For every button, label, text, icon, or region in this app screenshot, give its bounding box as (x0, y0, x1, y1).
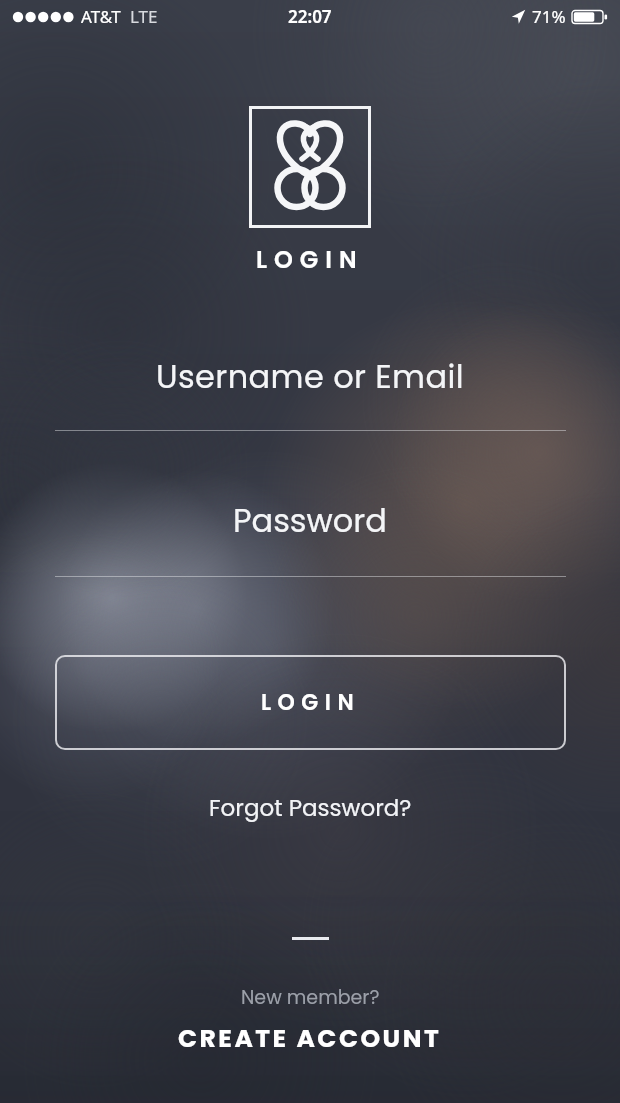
button[interactable]: CREATE ACCOUNT (178, 1021, 442, 1056)
staticText: LTE (130, 5, 158, 28)
staticText: LOGIN (256, 243, 364, 277)
button[interactable]: LOGIN (55, 655, 566, 750)
button[interactable]: Username or Email (156, 354, 465, 399)
staticText: 71% (532, 5, 566, 28)
staticText: AT&T (81, 5, 121, 28)
staticText: New member? (241, 984, 380, 1011)
staticText: LOGIN (261, 687, 361, 718)
button[interactable]: Forgot Password? (209, 792, 412, 824)
button[interactable]: Password (233, 498, 387, 543)
staticText: 22:07 (288, 5, 332, 28)
